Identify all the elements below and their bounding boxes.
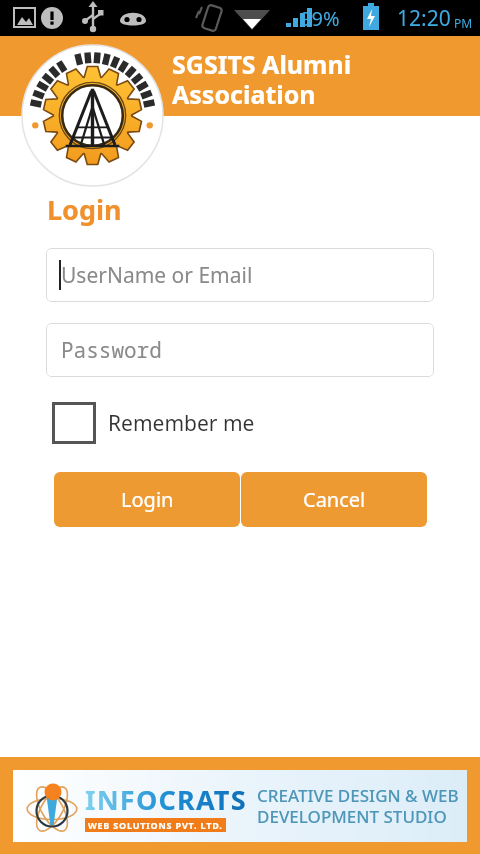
button[interactable]: Remember me [52,400,265,446]
staticText: Password [61,336,162,365]
staticText: SGSITS Alumni Association [172,47,352,112]
staticText: Cancel [303,486,366,513]
staticText: INFOCRATS [85,781,247,818]
staticText: WEB SOLUTIONS PVT. LTD. [88,819,223,831]
staticText: Remember me [108,409,255,438]
button[interactable]: INFOCRATS [0,757,480,854]
staticText: Login [121,486,174,513]
staticText: 12:20 [397,4,451,33]
button[interactable]: Cancel [241,472,427,527]
staticText: PM [454,15,473,31]
staticText: Login [47,191,122,228]
staticText: 99% [300,5,340,32]
button[interactable]: Login [54,472,240,527]
staticText: UserName or Email [61,261,253,290]
button[interactable]: UserName or Email [46,248,434,302]
staticText: CREATIVE DESIGN & WEB DEVELOPMENT STUDIO [257,784,459,828]
button[interactable]: Password [46,323,434,377]
